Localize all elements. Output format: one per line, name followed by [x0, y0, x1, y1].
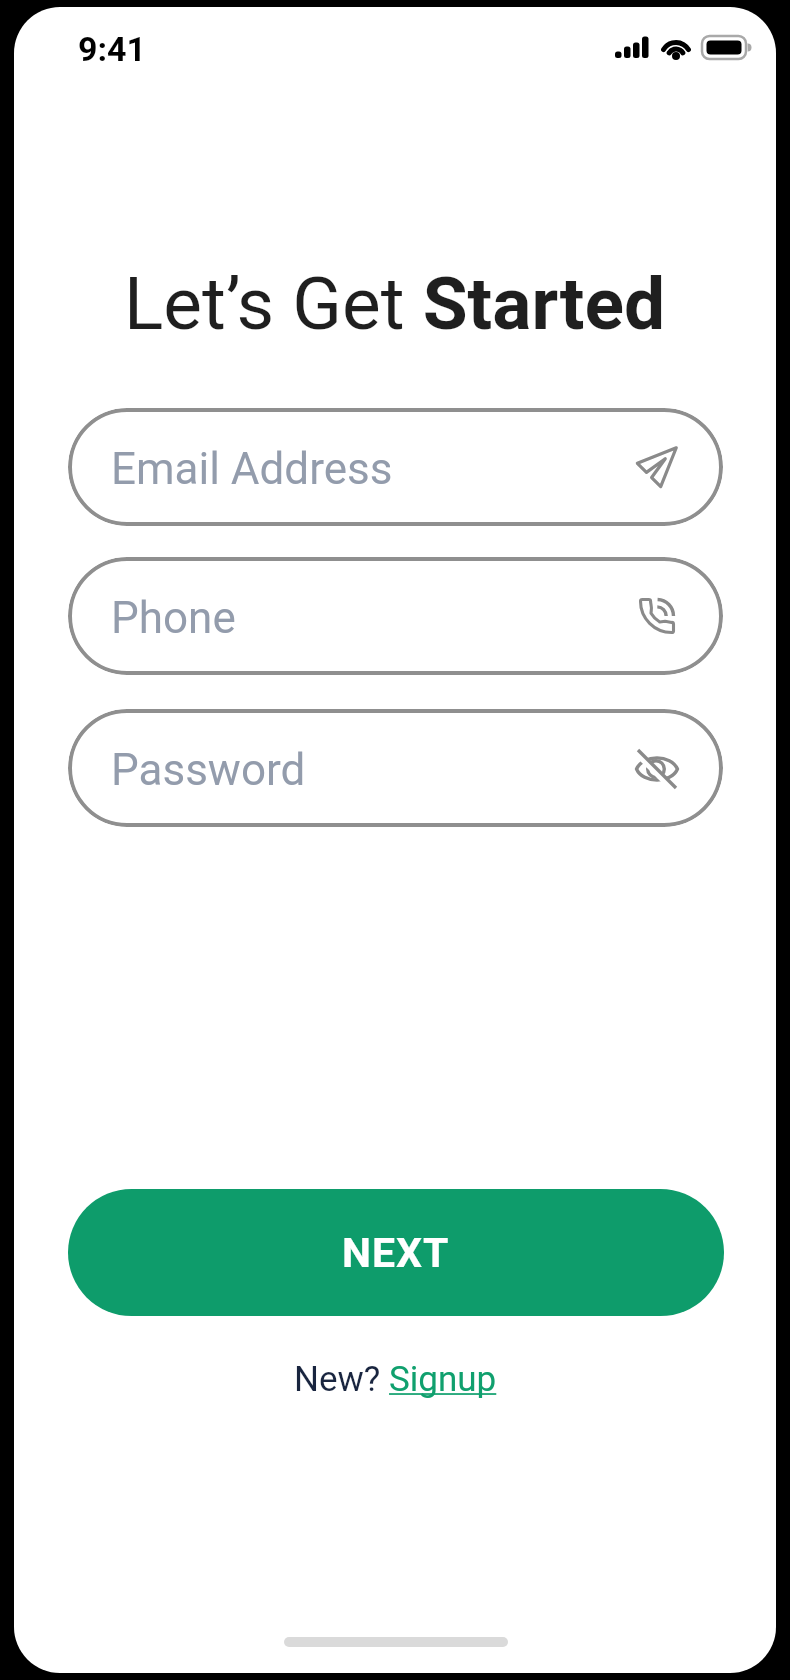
staticText: Email Address	[111, 443, 393, 495]
staticText: Let’s Get Started	[124, 261, 666, 347]
staticText: Phone	[111, 592, 236, 644]
button[interactable]: NEXT	[68, 1189, 724, 1316]
button[interactable]: Password	[68, 709, 723, 827]
staticText: 9:41	[78, 29, 147, 69]
button[interactable]: Phone	[68, 557, 723, 675]
staticText: NEXT	[342, 1229, 450, 1277]
button[interactable]: Email Address	[68, 408, 723, 526]
staticText: Password	[111, 744, 306, 796]
button[interactable]: New? Signup	[294, 1359, 497, 1400]
